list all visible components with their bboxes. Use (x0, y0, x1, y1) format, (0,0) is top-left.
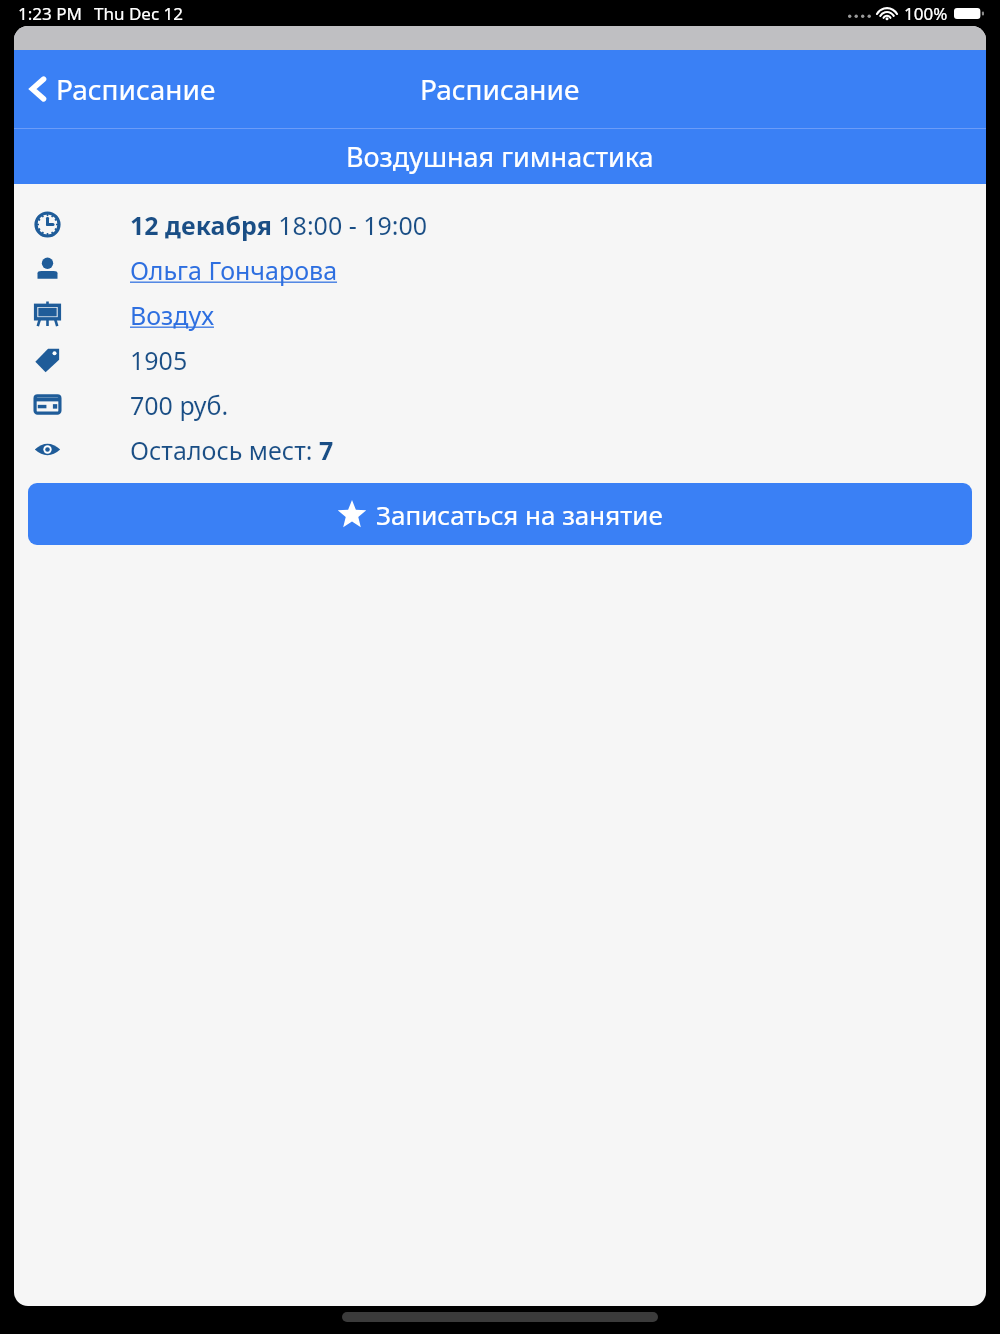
button[interactable]: Ольга Гончарова (130, 253, 338, 287)
staticText: 700 руб. (130, 388, 229, 422)
staticText: 12 декабря 18:00 - 19:00 (130, 208, 428, 242)
staticText: Воздух (130, 298, 214, 332)
button[interactable]: Расписание (14, 62, 230, 116)
staticText: Расписание (56, 70, 216, 108)
staticText: Воздушная гимнастика (346, 138, 654, 175)
staticText: 1:23 PM (18, 2, 82, 25)
button[interactable]: Воздух (130, 298, 214, 332)
staticText: 100% (904, 2, 948, 25)
staticText: 1905 (130, 343, 188, 377)
staticText: Записаться на занятие (376, 497, 663, 532)
staticText: Осталось мест: 7 (130, 433, 334, 467)
button[interactable]: Записаться на занятие (28, 483, 972, 545)
staticText: Расписание (420, 70, 580, 108)
staticText: Ольга Гончарова (130, 253, 338, 287)
staticText: Thu Dec 12 (94, 2, 183, 25)
